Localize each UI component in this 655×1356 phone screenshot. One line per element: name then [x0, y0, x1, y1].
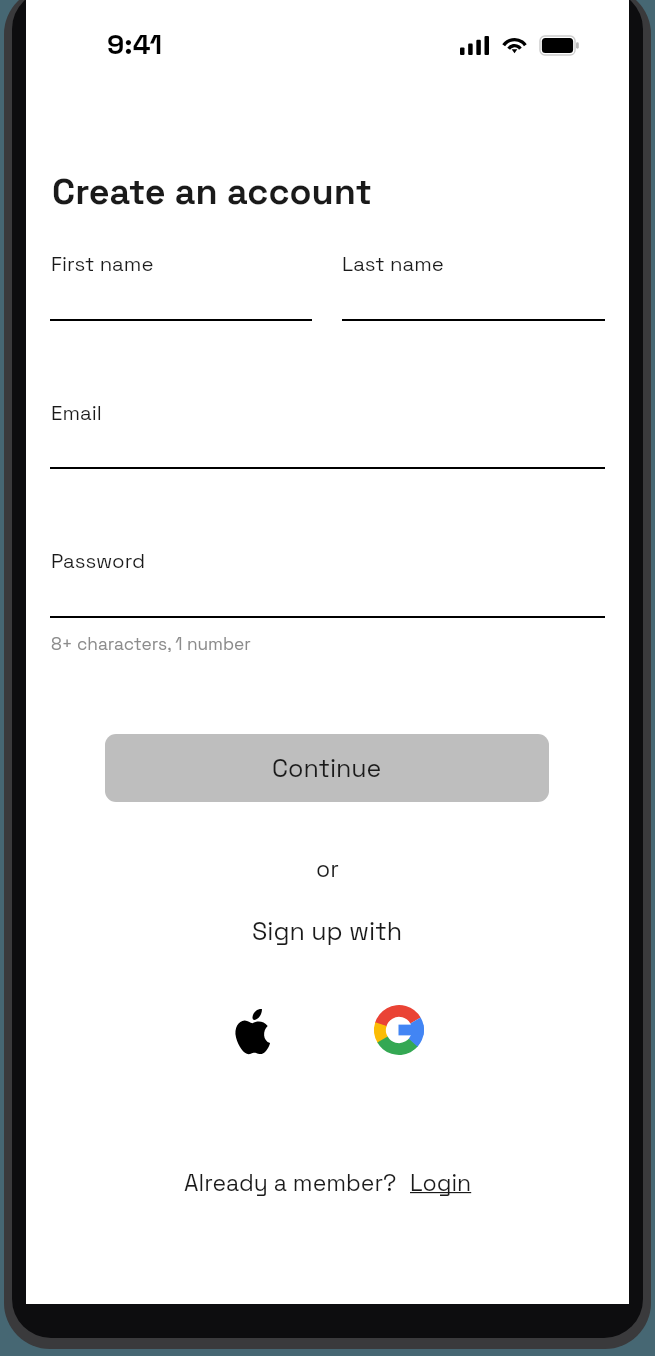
staticText: Continue	[272, 752, 382, 784]
staticText: 9:41	[107, 26, 163, 62]
staticText: Already a member?	[184, 1168, 397, 1197]
button[interactable]: Sign up with Google	[367, 998, 431, 1062]
staticText: 8+ characters, 1 number	[51, 633, 251, 655]
button[interactable]: Continue	[105, 734, 549, 802]
staticText: Sign up with	[252, 915, 403, 947]
staticText: Create an account	[52, 169, 372, 215]
staticText: Email	[51, 400, 102, 426]
staticText: First name	[51, 251, 154, 277]
staticText: Last name	[342, 251, 444, 277]
button[interactable]: Sign up with Apple	[220, 999, 284, 1063]
staticText: Login	[410, 1168, 472, 1197]
staticText: Password	[51, 548, 146, 574]
staticText: or	[316, 854, 339, 883]
button[interactable]: Already a member?	[184, 1168, 472, 1197]
